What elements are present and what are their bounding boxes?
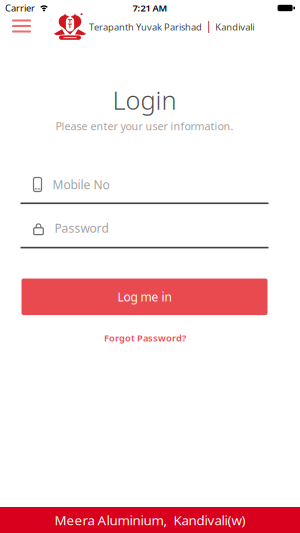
button[interactable]: Menu (8, 13, 35, 39)
button[interactable]: Mobile No (20, 173, 268, 195)
staticText: Carrier (5, 2, 35, 14)
staticText: 7:21 AM (132, 2, 167, 14)
staticText: Terapanth Yuvak Parishad (89, 21, 202, 33)
staticText: Please enter your user information. (55, 119, 233, 133)
staticText: Mobile No (52, 176, 109, 192)
staticText: Password (54, 220, 108, 236)
button[interactable]: Password (20, 217, 268, 239)
staticText: Login (112, 83, 176, 117)
staticText: Meera Aluminium, Kandivali(w) (54, 511, 245, 529)
button[interactable]: Forgot Password? (104, 332, 186, 344)
staticText: Log me in (117, 289, 171, 305)
button[interactable]: Log me in (21, 279, 267, 315)
staticText: Forgot Password? (104, 332, 186, 344)
staticText: Kandivali (215, 21, 254, 33)
